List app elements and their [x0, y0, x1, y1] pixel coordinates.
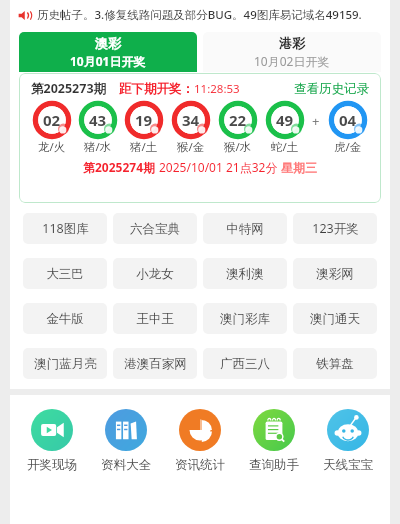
button[interactable]: 澳门蓝月亮: [23, 348, 107, 379]
button[interactable]: 铁算盘: [293, 348, 377, 379]
staticText: 10月02日开奖: [254, 53, 330, 69]
staticText: 王中王: [136, 311, 174, 327]
staticText: 118图库: [42, 220, 89, 237]
other: 资料大全: [105, 409, 147, 451]
staticText: 小龙女: [136, 266, 174, 282]
button[interactable]: 澳门通天: [293, 303, 377, 334]
staticText: 开奖现场: [27, 457, 77, 473]
staticText: 34: [182, 110, 200, 130]
staticText: 铁算盘: [316, 356, 354, 372]
staticText: 虎/金: [334, 139, 362, 155]
button[interactable]: 19: [121, 102, 167, 155]
staticText: 查询助手: [249, 457, 299, 473]
staticText: 蛇/土: [271, 139, 299, 155]
staticText: 资料大全: [101, 457, 151, 473]
button[interactable]: 天线宝宝: [312, 409, 384, 473]
staticText: 广西三八: [220, 356, 270, 372]
staticText: 六合宝典: [130, 221, 180, 237]
button[interactable]: 118图库: [23, 213, 107, 244]
staticText: 金牛版: [46, 311, 84, 327]
staticText: 10月01日开奖: [70, 53, 146, 69]
button[interactable]: 王中王: [113, 303, 197, 334]
staticText: 资讯统计: [175, 457, 225, 473]
staticText: +: [312, 112, 320, 130]
staticText: 49: [276, 110, 294, 130]
button[interactable]: 开奖现场: [16, 409, 88, 473]
staticText: 02: [43, 110, 61, 130]
staticText: 第2025274期: [83, 159, 159, 175]
staticText: 澳利澳: [226, 266, 264, 282]
button[interactable]: 港澳百家网: [113, 348, 197, 379]
staticText: 澳门蓝月亮: [34, 356, 97, 372]
staticText: 中特网: [226, 221, 264, 237]
button[interactable]: 澳彩: [19, 32, 197, 72]
staticText: 43: [89, 110, 107, 130]
button[interactable]: 澳利澳: [203, 258, 287, 289]
staticText: 港彩: [279, 35, 305, 51]
button[interactable]: 大三巴: [23, 258, 107, 289]
staticText: 11:28:53: [194, 81, 240, 97]
other: 天线宝宝: [327, 409, 369, 451]
button[interactable]: 港彩: [203, 32, 381, 72]
other: 查询助手: [253, 409, 295, 451]
button[interactable]: 中特网: [203, 213, 287, 244]
button[interactable]: 123开奖: [293, 213, 377, 244]
staticText: 猪/水: [84, 139, 112, 155]
button[interactable]: 澳门彩库: [203, 303, 287, 334]
staticText: 历史帖子。3.修复线路问题及部分BUG。49图库易记域名49159.: [37, 7, 362, 23]
staticText: 2025/10/01 21点32分: [159, 159, 281, 175]
staticText: 查看历史记录: [294, 81, 369, 97]
button[interactable]: 02: [29, 102, 75, 155]
button[interactable]: 六合宝典: [113, 213, 197, 244]
staticText: 澳彩: [95, 35, 121, 51]
staticText: 星期三: [281, 160, 317, 175]
button[interactable]: 澳彩网: [293, 258, 377, 289]
button[interactable]: 小龙女: [113, 258, 197, 289]
staticText: 猴/金: [177, 139, 205, 155]
button[interactable]: 资料大全: [90, 409, 162, 473]
staticText: 澳彩网: [316, 266, 354, 282]
staticText: 澳门彩库: [220, 311, 270, 327]
button[interactable]: 34: [167, 102, 214, 155]
staticText: 龙/火: [38, 139, 66, 155]
staticText: 大三巴: [46, 266, 84, 282]
button[interactable]: 49: [261, 102, 308, 155]
button[interactable]: 广西三八: [203, 348, 287, 379]
staticText: 澳门通天: [310, 311, 360, 327]
button[interactable]: 43: [75, 102, 121, 155]
button[interactable]: 查看历史记录: [294, 81, 369, 97]
button[interactable]: 资讯统计: [164, 409, 236, 473]
staticText: 123开奖: [312, 220, 359, 237]
staticText: 天线宝宝: [323, 457, 373, 473]
staticText: 第2025273期: [31, 80, 107, 97]
button[interactable]: 查询助手: [238, 409, 310, 473]
button[interactable]: 金牛版: [23, 303, 107, 334]
staticText: 19: [135, 110, 153, 130]
staticText: 04: [339, 110, 357, 130]
staticText: 港澳百家网: [124, 356, 187, 372]
staticText: 22: [229, 110, 247, 130]
staticText: 猪/土: [130, 139, 158, 155]
other: 开奖现场: [31, 409, 73, 451]
staticText: 距下期开奖：: [119, 81, 194, 97]
other: 资讯统计: [179, 409, 221, 451]
button[interactable]: 22: [214, 102, 261, 155]
button[interactable]: 历史帖子。3.修复线路问题及部分BUG。49图库易记域名49159.: [10, 0, 390, 30]
button[interactable]: 04: [324, 102, 371, 155]
staticText: 猴/水: [224, 139, 252, 155]
